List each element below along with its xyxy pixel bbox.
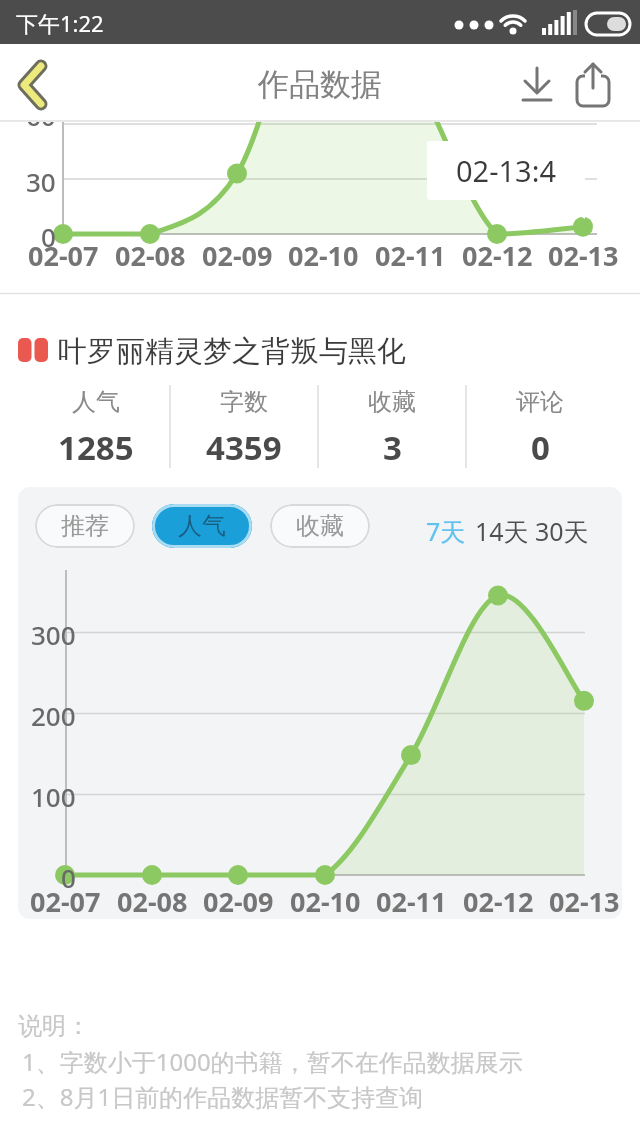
- staticText: 60: [26, 122, 56, 128]
- staticText: 02-08: [115, 237, 186, 269]
- staticText: 字数: [220, 387, 268, 417]
- button[interactable]: 7天: [421, 511, 471, 551]
- staticText: 0: [41, 219, 56, 249]
- staticText: 02-13: [549, 883, 620, 915]
- staticText: 说明：: [18, 1011, 90, 1041]
- staticText: 02-13: [548, 237, 619, 269]
- staticText: 0: [531, 425, 550, 469]
- staticText: 02-10: [288, 237, 359, 269]
- staticText: 收藏: [368, 387, 416, 417]
- staticText: 3: [383, 425, 402, 469]
- staticText: 300: [31, 617, 76, 647]
- staticText: 02-07: [28, 237, 99, 269]
- staticText: 02-09: [202, 237, 273, 269]
- staticText: 02-12: [463, 883, 534, 915]
- button[interactable]: 30天: [531, 511, 593, 551]
- staticText: 1、字数小于1000的书籍，暂不在作品数据展示: [22, 1045, 523, 1077]
- button[interactable]: 收藏: [270, 504, 370, 548]
- staticText: 人气: [72, 387, 120, 417]
- staticText: 人气: [178, 511, 226, 541]
- staticText: 作品数据: [258, 65, 382, 104]
- staticText: 2、8月1日前的作品数据暂不支持查询: [22, 1080, 424, 1112]
- staticText: 02-07: [30, 883, 101, 915]
- staticText: 02-09: [203, 883, 274, 915]
- button[interactable]: 人气: [152, 504, 252, 548]
- staticText: 评论: [516, 387, 564, 417]
- button[interactable]: [0, 44, 70, 121]
- staticText: 02-10: [290, 883, 361, 915]
- staticText: 02-11: [375, 237, 446, 269]
- staticText: 下午1:22: [16, 8, 104, 38]
- staticText: 02-13:4: [456, 151, 557, 190]
- button[interactable]: [515, 64, 559, 108]
- staticText: 4359: [206, 425, 282, 469]
- staticText: 收藏: [296, 511, 344, 541]
- staticText: 推荐: [61, 511, 109, 541]
- staticText: 02-11: [376, 883, 447, 915]
- staticText: 30天: [535, 514, 589, 548]
- staticText: 1285: [58, 425, 134, 469]
- staticText: 100: [31, 779, 76, 809]
- staticText: 7天: [426, 514, 466, 548]
- staticText: 30: [26, 164, 56, 194]
- staticText: 0: [61, 860, 76, 890]
- staticText: 叶罗丽精灵梦之背叛与黑化: [58, 333, 406, 367]
- staticText: 02-12: [462, 237, 533, 269]
- staticText: 14天: [475, 514, 529, 548]
- button[interactable]: 14天: [471, 511, 533, 551]
- button[interactable]: 推荐: [35, 504, 135, 548]
- staticText: 200: [31, 698, 76, 728]
- button[interactable]: [570, 60, 618, 112]
- staticText: 02-08: [117, 883, 188, 915]
